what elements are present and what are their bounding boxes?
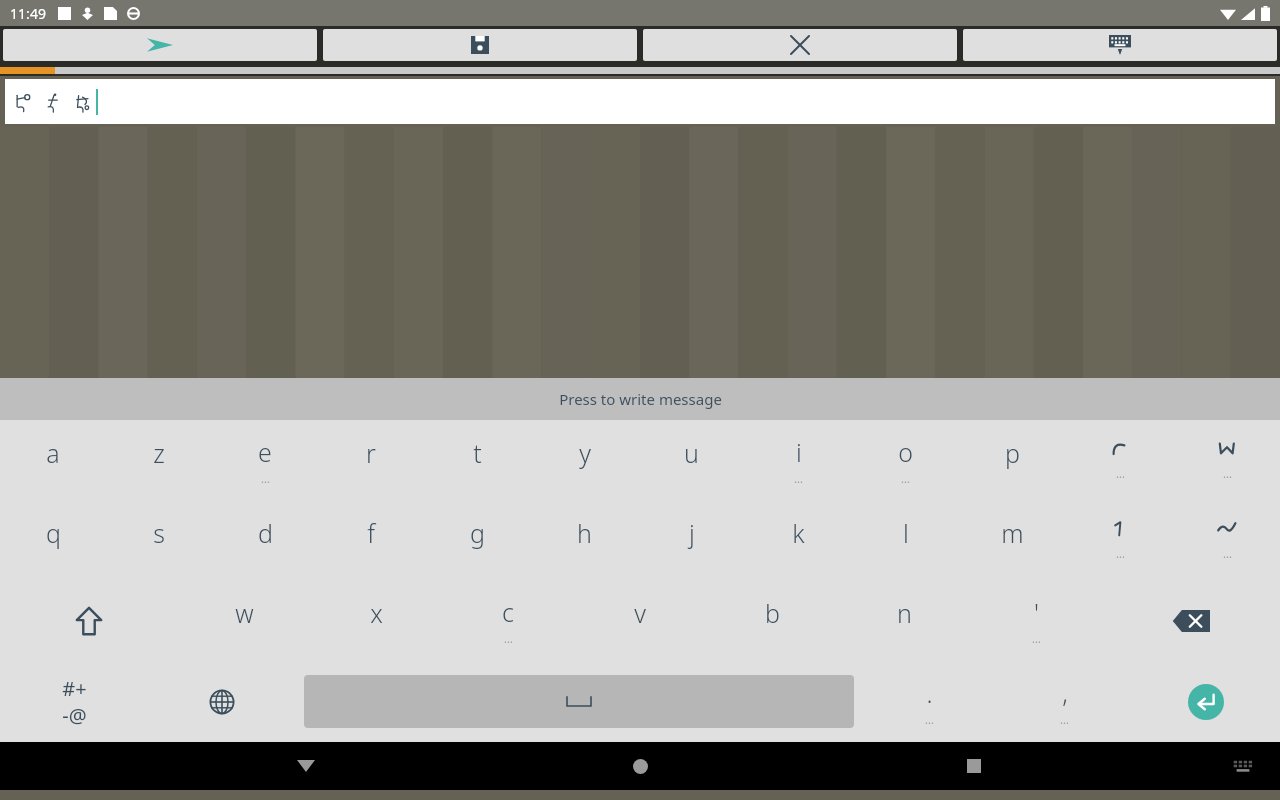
button[interactable]: Change language (148, 661, 296, 742)
staticText: c (502, 595, 514, 629)
button[interactable]: Enter (1132, 661, 1280, 742)
staticText: ... (1060, 712, 1069, 727)
button[interactable]: s (106, 500, 212, 580)
button[interactable]: m (959, 500, 1066, 580)
button[interactable]: Symbols (0, 661, 148, 742)
staticText: s (153, 516, 165, 550)
staticText: ... (901, 471, 910, 486)
button[interactable]: Keyboard active (1228, 751, 1258, 781)
staticText: ... (1223, 546, 1232, 561)
staticText: ... (504, 631, 513, 646)
staticText: ... (261, 471, 270, 486)
button[interactable]: Save (323, 29, 637, 61)
staticText: ... (1116, 546, 1125, 561)
staticText: y (579, 436, 591, 470)
staticText: ... (1116, 466, 1125, 481)
staticText: . (926, 676, 933, 710)
button[interactable]: Symbol arc (1066, 420, 1173, 500)
staticText: ' (1034, 595, 1039, 629)
button[interactable]: i (745, 420, 852, 500)
button[interactable]: v (574, 580, 706, 661)
button[interactable]: Recents (946, 742, 1002, 790)
staticText: a (46, 436, 60, 470)
button[interactable]: ' (970, 580, 1102, 661)
staticText: u (684, 436, 699, 470)
staticText: o (898, 435, 913, 469)
staticText: t (473, 436, 482, 470)
staticText: , (1062, 676, 1068, 710)
staticText: w (235, 596, 254, 630)
button[interactable]: p (959, 420, 1066, 500)
button[interactable]: Shift (0, 580, 178, 661)
button[interactable]: Backspace (1102, 580, 1280, 661)
button[interactable]: Send (3, 29, 317, 61)
staticText: f (367, 516, 375, 550)
staticText: x (370, 596, 383, 630)
button[interactable]: Shorthand input (5, 79, 1275, 124)
button[interactable]: Symbol one (1066, 500, 1173, 580)
button[interactable]: l (852, 500, 959, 580)
button[interactable]: Symbol caron (1173, 420, 1280, 500)
button[interactable]: , (997, 661, 1132, 742)
button[interactable]: e (212, 420, 318, 500)
staticText: h (577, 516, 592, 550)
button[interactable]: g (424, 500, 531, 580)
staticText: z (153, 436, 165, 470)
staticText: #+ (62, 675, 87, 702)
button[interactable]: Keyboard options (963, 29, 1277, 61)
button[interactable]: z (106, 420, 212, 500)
button[interactable]: y (531, 420, 638, 500)
button[interactable]: Symbol wave (1173, 500, 1280, 580)
button[interactable]: t (424, 420, 531, 500)
staticText: r (366, 436, 376, 470)
button[interactable]: j (638, 500, 745, 580)
button[interactable]: h (531, 500, 638, 580)
staticText: ... (794, 471, 803, 486)
staticText: i (796, 435, 802, 469)
staticText: -@ (62, 702, 87, 729)
button[interactable]: Hide keyboard (278, 742, 334, 790)
staticText: ... (925, 712, 934, 727)
button[interactable]: k (745, 500, 852, 580)
staticText: v (634, 596, 646, 630)
staticText: n (897, 596, 912, 630)
staticText: 11:49 (10, 4, 46, 23)
button[interactable]: r (318, 420, 424, 500)
staticText: q (46, 516, 61, 550)
staticText: d (258, 516, 273, 550)
staticText: k (792, 516, 805, 550)
button[interactable]: b (706, 580, 838, 661)
button[interactable]: n (838, 580, 970, 661)
button[interactable]: q (0, 500, 106, 580)
button[interactable]: x (310, 580, 442, 661)
button[interactable]: d (212, 500, 318, 580)
staticText: p (1005, 436, 1020, 470)
button[interactable]: w (178, 580, 310, 661)
button[interactable]: Space (304, 675, 854, 728)
staticText: b (765, 596, 780, 630)
button[interactable]: f (318, 500, 424, 580)
staticText: ... (1032, 631, 1041, 646)
button[interactable]: u (638, 420, 745, 500)
staticText: m (1001, 516, 1024, 550)
button[interactable]: o (852, 420, 959, 500)
staticText: g (470, 516, 485, 550)
staticText: j (689, 516, 695, 550)
button[interactable]: a (0, 420, 106, 500)
button[interactable]: Close (643, 29, 957, 61)
button[interactable]: Press to write message (0, 378, 1280, 420)
button[interactable]: Home (612, 742, 668, 790)
button[interactable]: c (442, 580, 574, 661)
staticText: ... (1223, 466, 1232, 481)
staticText: e (258, 435, 272, 469)
staticText: l (903, 516, 909, 550)
staticText: Press to write message (559, 389, 722, 409)
